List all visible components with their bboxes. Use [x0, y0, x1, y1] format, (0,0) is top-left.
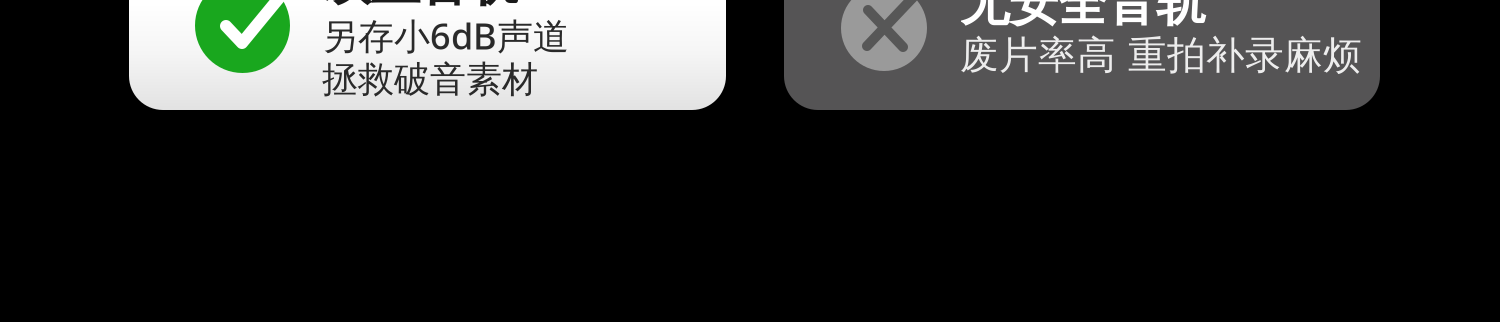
staticText: 另存小6dB声道: [322, 12, 569, 59]
button[interactable]: 无安全音轨: [784, 0, 1380, 110]
staticText: 双主音轨: [322, 0, 518, 14]
staticText: 无安全音轨: [960, 0, 1205, 34]
button[interactable]: 双主音轨: [129, 0, 726, 110]
staticText: 废片率高 重拍补录麻烦: [960, 32, 1362, 79]
staticText: 拯救破音素材: [322, 57, 538, 102]
